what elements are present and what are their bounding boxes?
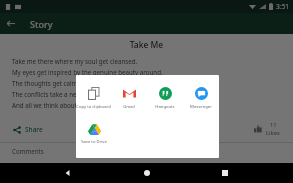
staticText: Take me there where my soul get cleansed… <box>12 57 138 65</box>
staticText: My eyes get inspired by the genuine beau… <box>12 68 163 76</box>
staticText: And all we think about is the light. <box>12 101 111 109</box>
staticText: Save to Drive <box>81 139 107 145</box>
button[interactable]: Back <box>0 13 21 34</box>
button[interactable]: Recents <box>215 163 235 183</box>
button[interactable]: Copy to clipboard <box>76 83 111 112</box>
staticText: The thoughts get calmer. <box>12 79 85 87</box>
button[interactable]: Hangouts <box>147 83 183 112</box>
staticText: Take Me <box>0 39 293 51</box>
staticText: Messenger <box>190 104 212 110</box>
staticText: 3:51 <box>276 2 289 11</box>
staticText: Comments <box>12 147 44 155</box>
button[interactable]: Save to Drive <box>76 118 112 147</box>
staticText: Copy to clipboard <box>76 104 111 110</box>
staticText: 11 <box>270 121 277 129</box>
button[interactable]: 11 <box>251 118 283 140</box>
button[interactable]: Home <box>137 163 157 183</box>
staticText: The conflicts take a new shape of a melo… <box>12 90 138 98</box>
button[interactable]: Share <box>10 122 46 137</box>
staticText: Gmail <box>123 104 135 110</box>
button[interactable]: Gmail <box>111 83 147 112</box>
button[interactable]: Messenger <box>183 83 219 112</box>
staticText: Share <box>25 125 43 134</box>
staticText: Hangouts <box>155 104 175 110</box>
button[interactable]: Back <box>58 163 78 183</box>
staticText: Story <box>30 18 53 30</box>
staticText: Likes <box>266 129 280 137</box>
